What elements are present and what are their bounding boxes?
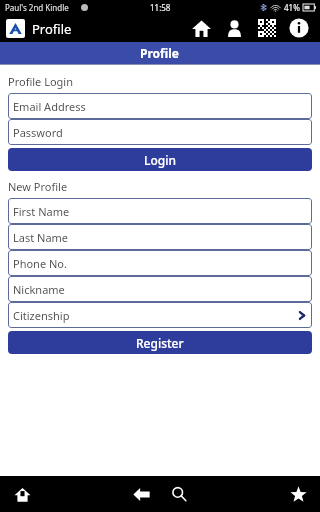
staticText: Profile (32, 20, 72, 38)
button[interactable]: Citizenship (8, 302, 312, 328)
button[interactable]: Account (221, 15, 247, 41)
button[interactable]: App logo (6, 19, 25, 38)
button[interactable]: Phone No. (8, 250, 312, 276)
staticText: Password (13, 125, 63, 140)
staticText: Paul's 2nd Kindle (5, 2, 69, 13)
staticText: Last Name (13, 230, 69, 245)
staticText: Nickname (13, 282, 65, 297)
button[interactable]: Register (8, 331, 312, 354)
staticText: Email Address (13, 99, 86, 114)
button[interactable]: Home (8, 480, 36, 508)
button[interactable]: Search (165, 480, 193, 508)
staticText: Register (136, 335, 184, 351)
button[interactable]: Back (127, 480, 155, 508)
button[interactable]: Login (8, 148, 312, 171)
button[interactable]: Last Name (8, 224, 312, 250)
button[interactable]: Email Address (8, 93, 312, 119)
staticText: Phone No. (13, 256, 67, 271)
staticText: Profile (140, 45, 180, 61)
button[interactable]: Info (286, 15, 312, 41)
staticText: New Profile (8, 179, 68, 194)
button[interactable]: Nickname (8, 276, 312, 302)
staticText: 41% (284, 2, 300, 13)
staticText: First Name (13, 204, 70, 219)
staticText: 11:58 (150, 2, 171, 13)
button[interactable]: First Name (8, 198, 312, 224)
button[interactable]: Password (8, 119, 312, 145)
button[interactable]: Favorites (284, 480, 312, 508)
button[interactable]: Home (188, 15, 214, 41)
button[interactable]: Scan QR code (254, 15, 280, 41)
staticText: Citizenship (13, 308, 70, 323)
staticText: Profile Login (8, 74, 73, 89)
staticText: Login (144, 152, 176, 168)
